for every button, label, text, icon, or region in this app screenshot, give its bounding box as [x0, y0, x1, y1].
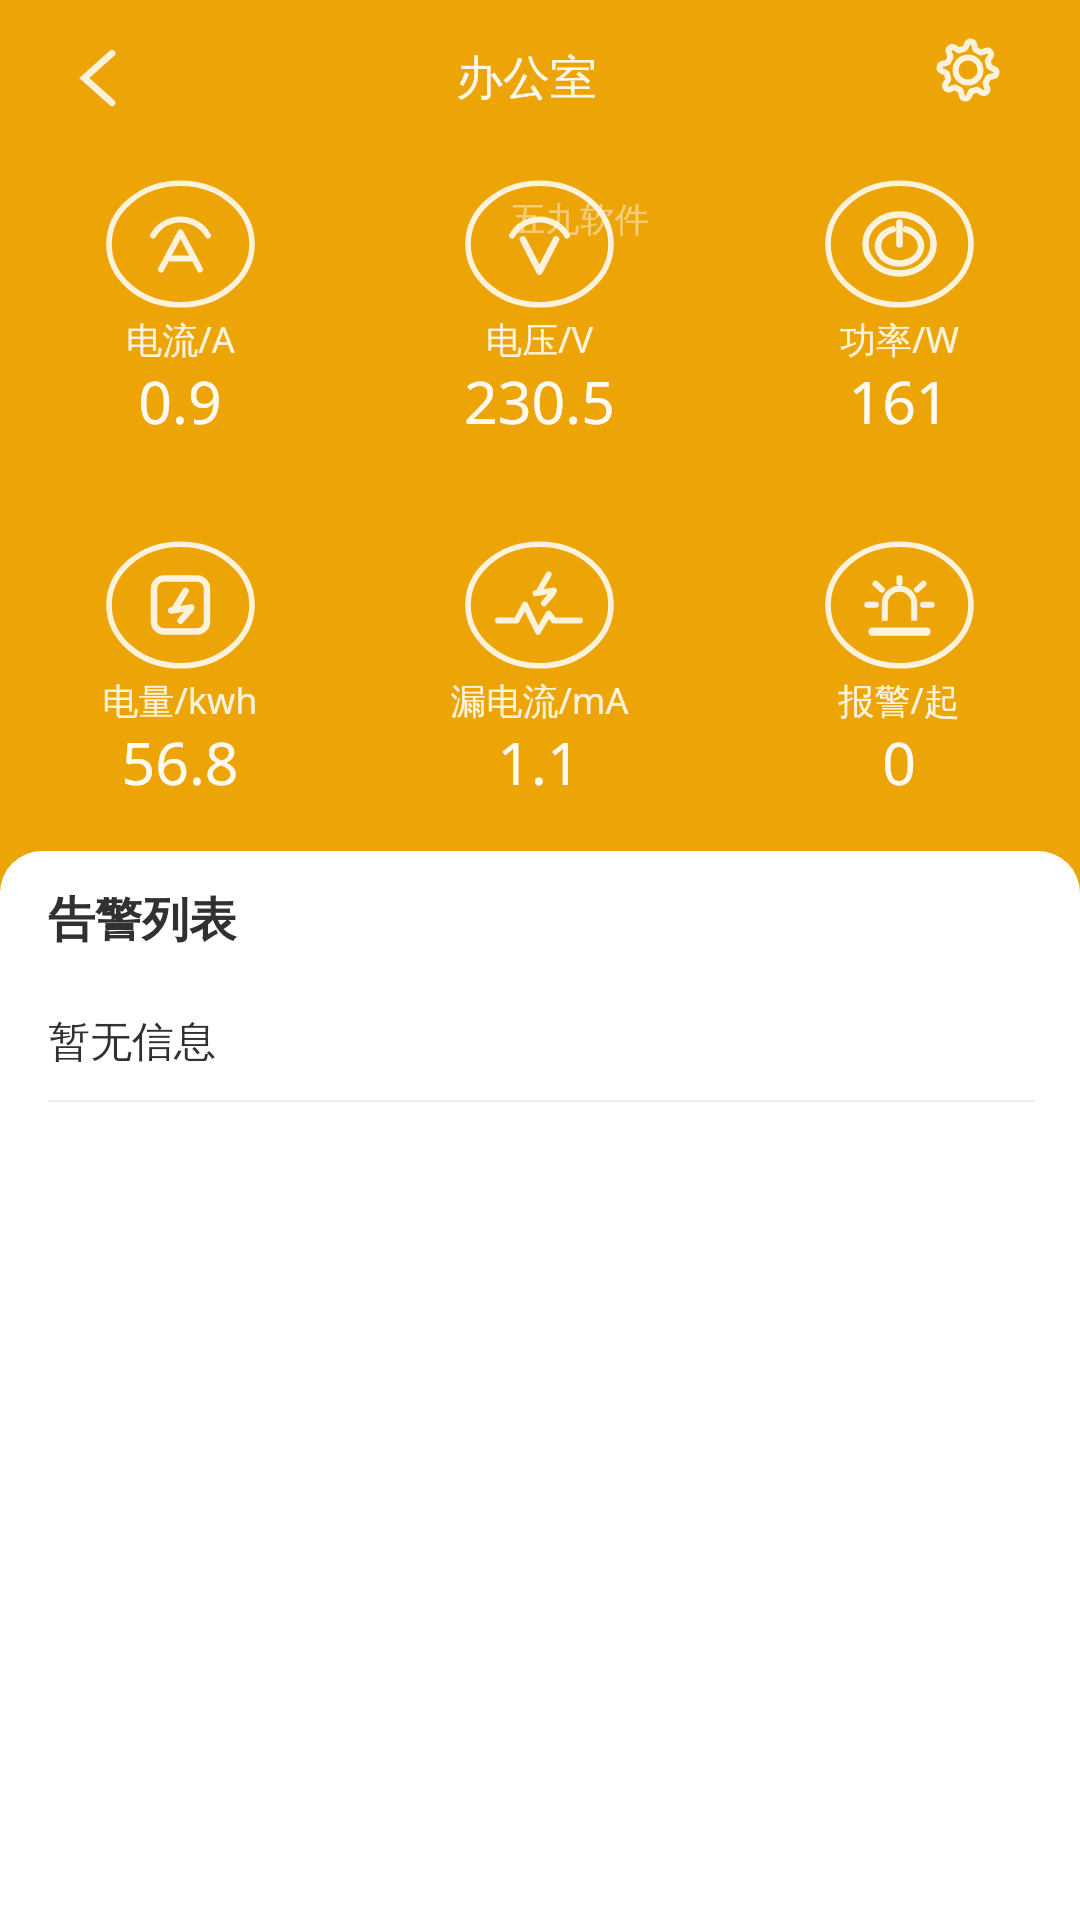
- staticText: 电压/V: [486, 315, 593, 364]
- staticText: 功率/W: [840, 315, 959, 364]
- staticText: 办公室: [456, 49, 597, 108]
- staticText: 电流/A: [126, 315, 235, 364]
- button[interactable]: 功率/W: [734, 173, 1064, 433]
- button[interactable]: Back: [63, 40, 139, 116]
- staticText: 漏电流/mA: [450, 676, 629, 725]
- staticText: 56.8: [121, 722, 239, 802]
- staticText: 告警列表: [48, 891, 236, 950]
- button[interactable]: Settings: [932, 34, 1004, 106]
- staticText: 电量/kwh: [102, 676, 258, 725]
- staticText: 1.1: [497, 722, 581, 802]
- button[interactable]: 电压/V: [374, 173, 704, 433]
- button[interactable]: 漏电流/mA: [374, 534, 704, 794]
- button[interactable]: 电流/A: [15, 173, 345, 433]
- button[interactable]: 暂无信息: [0, 1016, 1080, 1069]
- staticText: 五九软件: [511, 198, 650, 241]
- staticText: 暂无信息: [48, 1016, 216, 1069]
- staticText: 230.5: [464, 361, 615, 441]
- staticText: 0.9: [138, 361, 222, 441]
- staticText: 报警/起: [838, 676, 960, 725]
- button[interactable]: 报警/起: [734, 534, 1064, 794]
- staticText: 161: [848, 361, 950, 441]
- button[interactable]: 电量/kwh: [15, 534, 345, 794]
- staticText: 0: [882, 722, 916, 802]
